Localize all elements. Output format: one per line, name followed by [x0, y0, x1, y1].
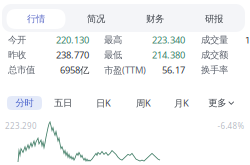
button[interactable]: 研报: [184, 9, 243, 29]
staticText: 研报: [205, 13, 223, 25]
staticText: 昨收: [8, 49, 26, 61]
staticText: 日K: [96, 97, 111, 109]
staticText: 今开: [8, 34, 26, 46]
staticText: 220.130: [56, 34, 89, 46]
button[interactable]: 财务: [125, 9, 184, 29]
button[interactable]: 日K: [89, 96, 117, 110]
button[interactable]: 月K: [167, 96, 195, 110]
staticText: 五日: [54, 97, 72, 109]
staticText: 成交额: [201, 49, 228, 61]
staticText: 最高: [104, 34, 122, 46]
staticText: 1204.4万: [245, 34, 250, 46]
staticText: 换手率: [201, 64, 228, 76]
staticText: 223.290: [5, 121, 37, 131]
staticText: 最低: [104, 49, 122, 61]
staticText: 总市值: [8, 64, 35, 76]
button[interactable]: 分时: [7, 96, 42, 110]
staticText: 财务: [146, 13, 164, 25]
button[interactable]: 更多: [204, 96, 238, 110]
staticText: -6.48%: [217, 121, 244, 131]
staticText: 分时: [15, 97, 33, 109]
button[interactable]: 五日: [49, 96, 77, 110]
staticText: 223.340: [152, 34, 185, 46]
staticText: 月K: [174, 97, 189, 109]
staticText: 行情: [27, 13, 45, 25]
staticText: 周K: [136, 97, 151, 109]
button[interactable]: 简况: [66, 9, 125, 29]
staticText: 成交量: [201, 34, 228, 46]
staticText: 238.770: [56, 49, 89, 61]
staticText: 更多: [208, 97, 226, 109]
staticText: 6958亿: [60, 64, 89, 76]
button[interactable]: 周K: [129, 96, 157, 110]
staticText: 简况: [87, 13, 105, 25]
staticText: 214.380: [152, 49, 185, 61]
staticText: 市盈(TTM): [104, 64, 146, 76]
staticText: 56.17: [162, 64, 185, 76]
button[interactable]: 行情: [6, 9, 65, 29]
